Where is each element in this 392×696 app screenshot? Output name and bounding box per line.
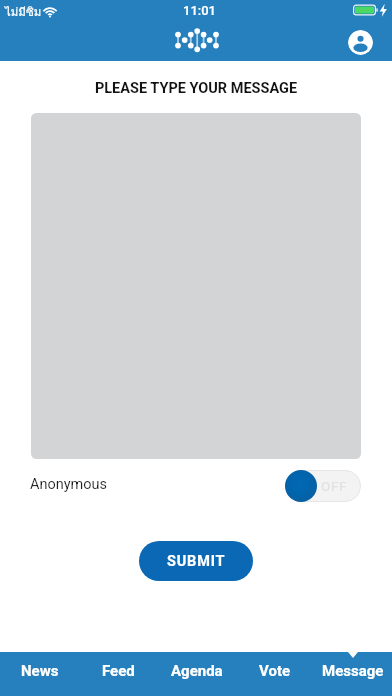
button[interactable]: Message [314, 652, 392, 696]
staticText: ไม่มีซิม [5, 3, 42, 21]
staticText: Agenda [171, 662, 223, 680]
button[interactable]: Vote [236, 652, 314, 696]
button[interactable]: Feed [79, 652, 158, 696]
staticText: Feed [102, 662, 135, 680]
staticText: PLEASE TYPE YOUR MESSAGE [0, 80, 392, 97]
staticText: 11:01 [183, 3, 216, 18]
staticText: OFF [321, 478, 348, 494]
staticText: Vote [259, 662, 291, 680]
staticText: SUBMIT [167, 553, 226, 570]
staticText: Message [322, 662, 384, 680]
staticText: News [21, 662, 59, 680]
button[interactable]: Agenda [158, 652, 236, 696]
button[interactable]: SUBMIT [139, 541, 253, 581]
button[interactable]: Account [348, 30, 373, 55]
button[interactable]: OFF [285, 470, 361, 502]
button[interactable]: News [0, 652, 79, 696]
staticText: Anonymous [30, 476, 108, 493]
